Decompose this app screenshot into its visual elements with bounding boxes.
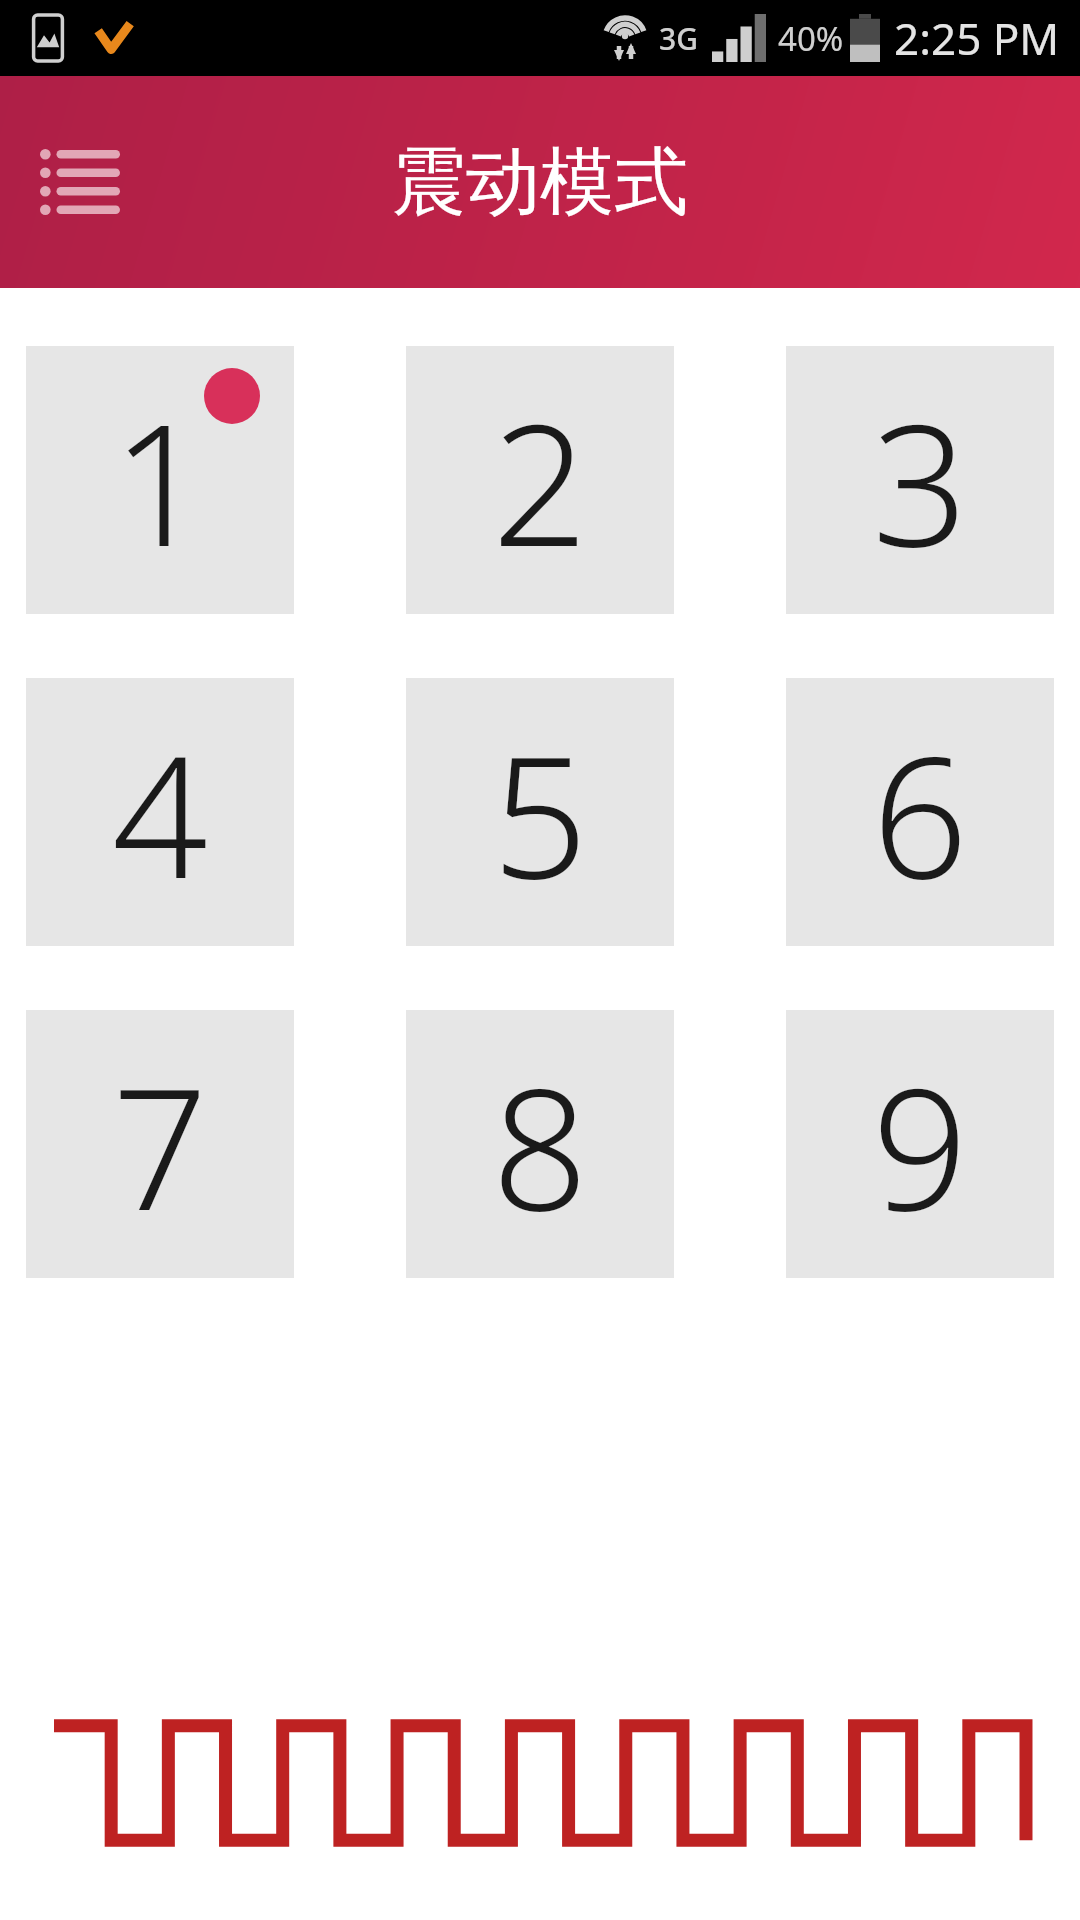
staticText: 3 <box>872 366 968 595</box>
staticText: 7 <box>112 1030 208 1259</box>
button[interactable]: 3 <box>786 346 1054 614</box>
staticText: 4 <box>112 698 208 927</box>
button[interactable]: Menu <box>32 134 128 230</box>
staticText: 6 <box>872 698 968 927</box>
button[interactable]: 4 <box>26 678 294 946</box>
staticText: 9 <box>872 1030 968 1259</box>
button[interactable]: 9 <box>786 1010 1054 1278</box>
staticText: 2:25 PM <box>894 8 1060 68</box>
button[interactable]: 5 <box>406 678 674 946</box>
staticText: 2 <box>492 366 588 595</box>
button[interactable]: 7 <box>26 1010 294 1278</box>
staticText: 5 <box>492 698 588 927</box>
button[interactable]: 8 <box>406 1010 674 1278</box>
staticText: 8 <box>492 1030 588 1259</box>
staticText: 震动模式 <box>392 136 688 229</box>
button[interactable]: 2 <box>406 346 674 614</box>
staticText: 40% <box>778 16 844 61</box>
staticText: 1 <box>112 366 208 595</box>
button[interactable]: 6 <box>786 678 1054 946</box>
button[interactable]: 1 <box>26 346 294 614</box>
staticText: 3G <box>659 18 698 59</box>
